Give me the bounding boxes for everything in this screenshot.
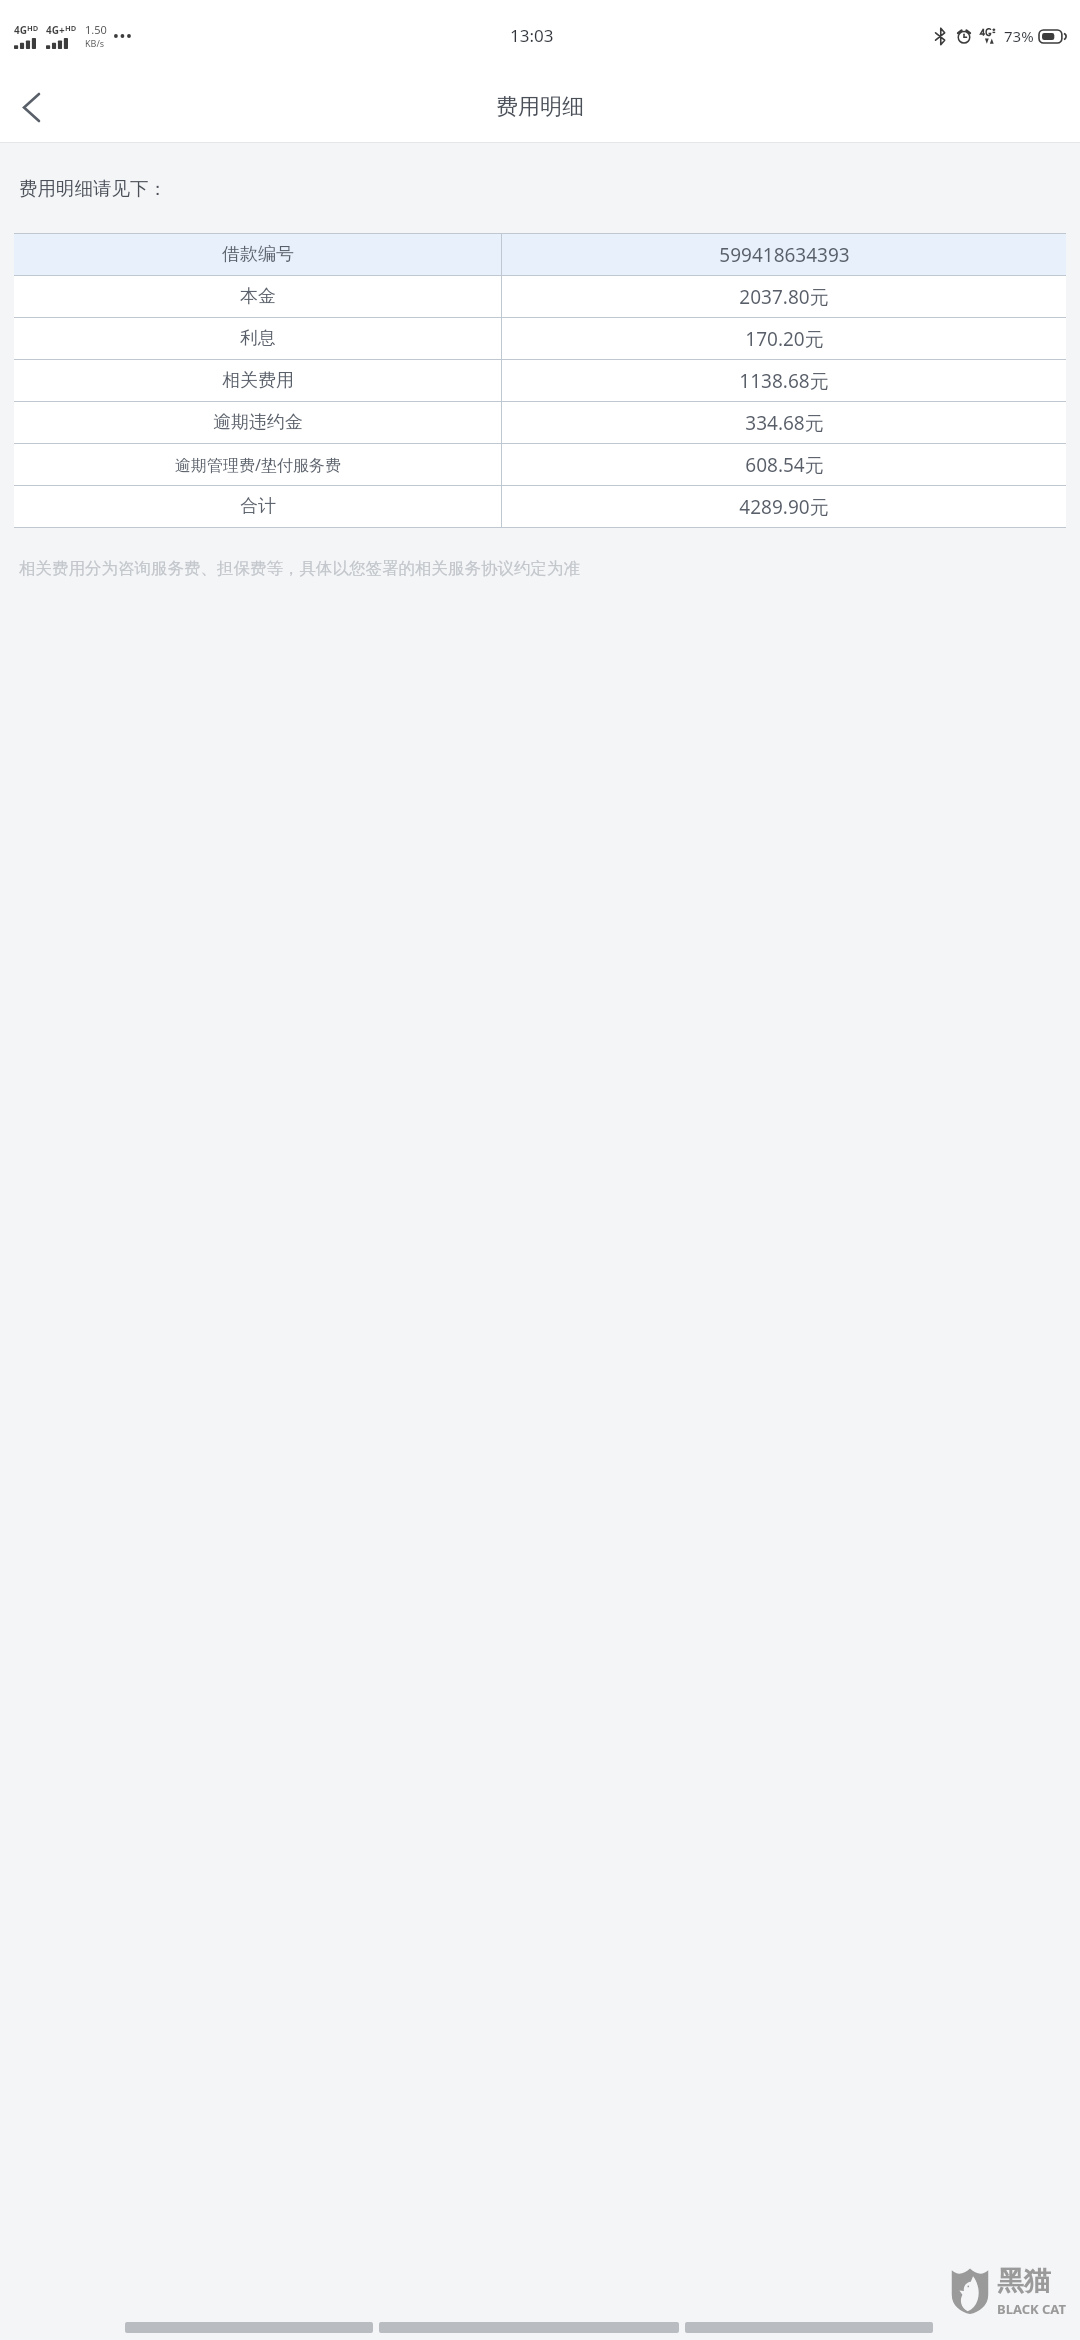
staticText: 相关费用 — [222, 369, 294, 392]
staticText: 费用明细请见下： — [19, 177, 167, 200]
button[interactable]: Back — [0, 76, 62, 138]
staticText: 2037.80元 — [739, 284, 829, 310]
staticText: 170.20元 — [745, 326, 824, 352]
staticText: 逾期管理费/垫付服务费 — [175, 454, 341, 476]
button[interactable]: 本金 — [14, 276, 1066, 317]
staticText: 逾期违约金 — [213, 411, 303, 434]
staticText: 1138.68元 — [739, 368, 829, 394]
staticText: 608.54元 — [745, 452, 824, 478]
staticText: 73% — [1004, 26, 1034, 46]
staticText: KB/s — [85, 37, 105, 49]
button[interactable]: 借款编号 — [14, 234, 1066, 275]
staticText: 费用明细 — [496, 93, 584, 121]
staticText: BLACK CAT — [997, 2300, 1066, 2318]
staticText: 本金 — [240, 285, 276, 308]
staticText: 相关费用分为咨询服务费、担保费等，具体以您签署的相关服务协议约定为准 — [19, 558, 580, 579]
staticText: HD — [27, 23, 39, 33]
staticText: 利息 — [240, 327, 276, 350]
button[interactable]: 利息 — [14, 318, 1066, 359]
staticText: 4289.90元 — [739, 494, 829, 520]
button[interactable]: 相关费用 — [14, 360, 1066, 401]
staticText: 黑猫 — [997, 2264, 1051, 2298]
staticText: 13:03 — [510, 24, 554, 47]
button[interactable]: 合计 — [14, 486, 1066, 527]
staticText: 334.68元 — [745, 410, 824, 436]
staticText: 合计 — [240, 495, 276, 518]
staticText: 借款编号 — [222, 243, 294, 266]
staticText: 4G — [14, 23, 27, 37]
staticText: 4G+ — [46, 23, 65, 37]
button[interactable]: 逾期违约金 — [14, 402, 1066, 443]
staticText: 1.50 — [85, 22, 107, 37]
button[interactable]: 逾期管理费/垫付服务费 — [14, 444, 1066, 485]
staticText: 599418634393 — [719, 242, 850, 268]
staticText: HD — [65, 23, 77, 33]
